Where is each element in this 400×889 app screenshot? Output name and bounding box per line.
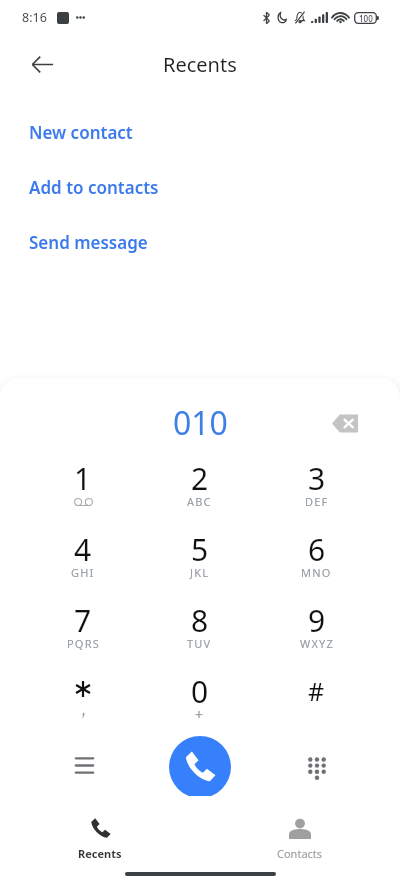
button[interactable]: Add to contacts: [0, 160, 400, 215]
staticText: 8:16: [22, 9, 47, 26]
staticText: 5: [191, 529, 209, 570]
button[interactable]: 4: [25, 512, 141, 583]
staticText: Recents: [163, 51, 237, 78]
staticText: 6: [308, 529, 326, 570]
staticText: 1: [74, 458, 92, 499]
staticText: PQRS: [67, 636, 100, 651]
button[interactable]: Send message: [0, 215, 400, 270]
button[interactable]: More options: [58, 739, 110, 791]
staticText: 0: [191, 671, 209, 712]
staticText: 7: [74, 600, 92, 641]
button[interactable]: Back: [19, 41, 65, 87]
button[interactable]: 3: [258, 441, 375, 512]
staticText: Send message: [29, 231, 148, 254]
button[interactable]: 2: [141, 441, 258, 512]
staticText: 9: [308, 600, 326, 641]
button[interactable]: New contact: [0, 105, 400, 160]
staticText: DEF: [305, 494, 329, 509]
staticText: MNO: [301, 565, 332, 580]
staticText: #: [308, 674, 325, 708]
button[interactable]: Backspace: [323, 401, 367, 445]
staticText: Add to contacts: [29, 176, 159, 199]
button[interactable]: [25, 654, 141, 725]
button[interactable]: 6: [258, 512, 375, 583]
staticText: JKL: [190, 565, 210, 580]
staticText: 3: [308, 458, 326, 499]
staticText: 010: [173, 401, 228, 445]
button[interactable]: Dialpad: [291, 741, 343, 793]
button[interactable]: Recents: [0, 796, 200, 866]
staticText: New contact: [29, 121, 133, 144]
staticText: 8: [191, 600, 209, 641]
staticText: WXYZ: [300, 636, 334, 651]
staticText: 100: [359, 13, 373, 24]
button[interactable]: 0: [141, 654, 258, 725]
staticText: Contacts: [277, 846, 323, 861]
button[interactable]: Call: [169, 736, 231, 796]
button[interactable]: 8: [141, 583, 258, 654]
button[interactable]: Contacts: [200, 796, 400, 866]
staticText: TUV: [187, 636, 212, 651]
button[interactable]: 9: [258, 583, 375, 654]
staticText: ABC: [187, 494, 212, 509]
staticText: 4: [74, 529, 92, 570]
staticText: +: [195, 705, 204, 724]
button[interactable]: 5: [141, 512, 258, 583]
staticText: 2: [191, 458, 209, 499]
button[interactable]: 1: [25, 441, 141, 512]
staticText: Recents: [78, 846, 122, 861]
staticText: GHI: [71, 565, 95, 580]
button[interactable]: 7: [25, 583, 141, 654]
button[interactable]: #: [258, 654, 375, 725]
